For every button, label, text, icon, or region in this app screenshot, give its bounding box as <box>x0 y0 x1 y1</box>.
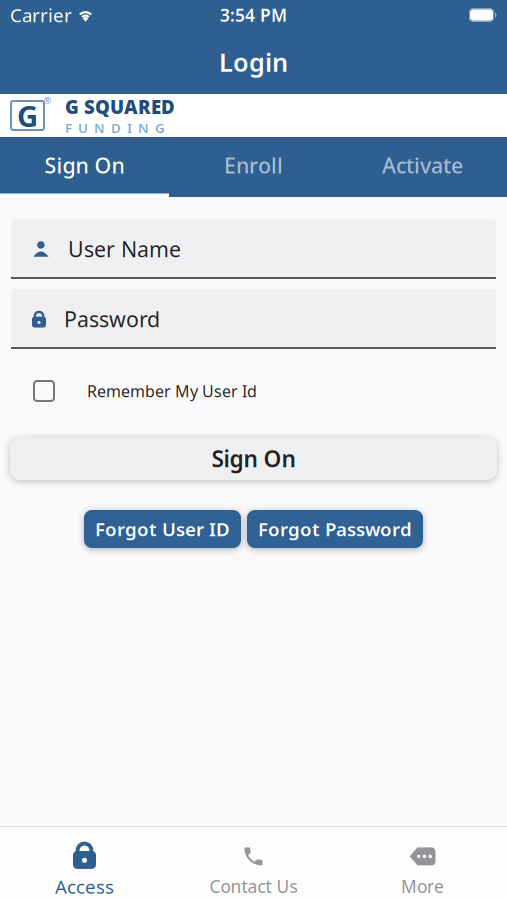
staticText: Contact Us <box>209 875 297 898</box>
staticText: G <box>17 96 38 135</box>
staticText: Password <box>64 305 160 333</box>
button[interactable]: Contact Us <box>169 843 338 898</box>
staticText: Activate <box>382 151 463 179</box>
staticText: ® <box>43 94 51 107</box>
staticText: More <box>401 875 444 898</box>
staticText: Forgot Password <box>258 517 412 541</box>
staticText: Sign On <box>211 443 295 473</box>
button[interactable]: Forgot User ID <box>84 510 241 548</box>
staticText: G SQUARED <box>65 94 175 119</box>
staticText: Enroll <box>224 151 283 179</box>
button[interactable]: Enroll <box>169 137 338 197</box>
button[interactable]: User Name <box>11 219 496 279</box>
button[interactable]: Password <box>11 289 496 349</box>
staticText: Carrier <box>10 3 72 27</box>
staticText: F U N D I N G <box>65 119 165 137</box>
button[interactable]: Sign On <box>0 137 169 197</box>
button[interactable]: Activate <box>338 137 507 197</box>
button[interactable]: Forgot Password <box>247 510 423 548</box>
button[interactable]: Access <box>0 842 169 899</box>
staticText: Remember My User Id <box>87 380 257 402</box>
button[interactable]: More <box>338 843 507 898</box>
staticText: User Name <box>68 235 181 263</box>
staticText: Login <box>219 45 288 79</box>
staticText: Sign On <box>44 151 124 179</box>
button[interactable]: Sign On <box>0 437 507 480</box>
staticText: Forgot User ID <box>95 517 230 541</box>
button[interactable]: Remember My User Id <box>0 380 507 402</box>
staticText: 3:54 PM <box>220 3 287 26</box>
staticText: Access <box>55 874 114 899</box>
